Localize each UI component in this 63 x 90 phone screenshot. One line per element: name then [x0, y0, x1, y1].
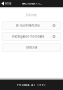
- staticText: Atrás: [5, 2, 11, 5]
- staticText: Ordenar: [26, 46, 37, 49]
- staticText: MACHINERY-P…: [21, 2, 41, 5]
- staticText: PRUEBA A1 1997: [17, 83, 46, 87]
- button[interactable]: En la última fecha: [2, 21, 61, 29]
- button[interactable]: Ordenar: [2, 43, 61, 51]
- button[interactable]: Investigación heredada: [2, 32, 61, 40]
- staticText: En la última fecha: [16, 24, 39, 27]
- button[interactable]: Atrás: [0, 0, 12, 7]
- staticText: Informe: [26, 13, 37, 17]
- staticText: Investigación heredada: [11, 35, 43, 38]
